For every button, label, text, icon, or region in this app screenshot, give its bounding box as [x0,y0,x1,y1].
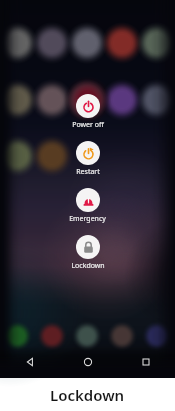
button[interactable]: Home [59,346,117,378]
button[interactable]: Restart [76,141,100,177]
button[interactable]: Emergency [69,188,106,224]
staticText: Emergency [69,214,106,224]
button[interactable]: Lockdown [71,235,105,271]
staticText: Lockdown [71,261,105,271]
button[interactable]: Back [0,346,59,378]
button[interactable]: Power off [72,94,104,130]
staticText: Lockdown [50,385,125,405]
staticText: Power off [72,120,104,130]
button[interactable]: Recents [117,346,175,378]
staticText: Restart [76,167,100,177]
